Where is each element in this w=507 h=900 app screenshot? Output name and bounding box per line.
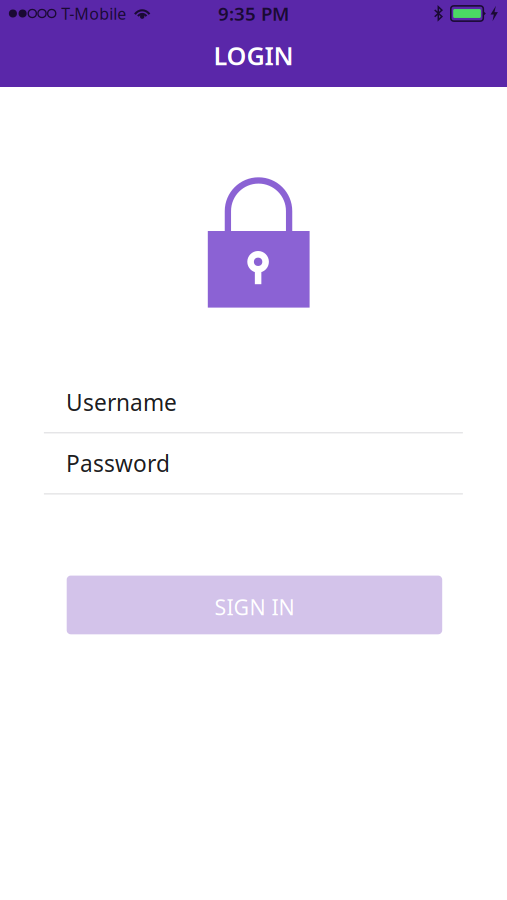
button[interactable]: Username xyxy=(44,372,463,433)
button[interactable]: SIGN IN xyxy=(67,576,442,634)
staticText: LOGIN xyxy=(213,39,293,72)
staticText: Password xyxy=(66,448,170,478)
button[interactable]: Password xyxy=(44,433,463,494)
staticText: T-Mobile xyxy=(61,3,126,24)
staticText: Username xyxy=(66,387,177,417)
staticText: SIGN IN xyxy=(214,593,294,621)
staticText: 9:35 PM xyxy=(218,1,289,26)
